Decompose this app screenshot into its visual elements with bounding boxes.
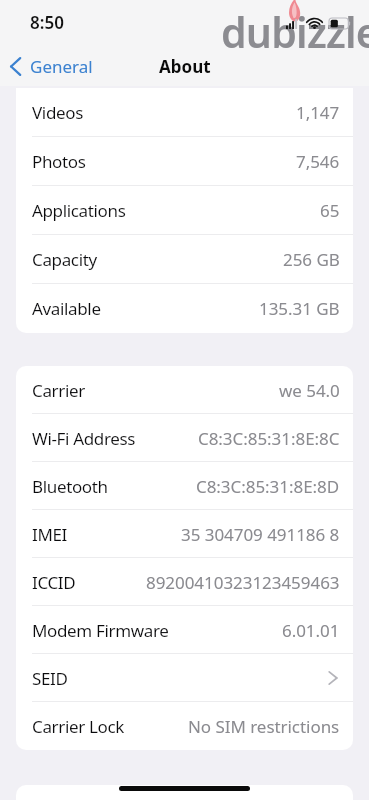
button[interactable]: Bluetooth [16,462,353,510]
staticText: 6.01.01 [282,619,340,642]
button[interactable]: Back [9,55,93,78]
button[interactable]: Photos [16,137,353,186]
button[interactable]: Carrier [16,366,353,414]
staticText: 135.31 GB [259,297,340,320]
button[interactable]: Capacity [16,235,353,284]
staticText: Applications [32,199,126,222]
staticText: 1,147 [296,101,340,124]
button[interactable]: IMEI [16,510,353,558]
staticText: Modem Firmware [32,619,169,642]
staticText: SEID [32,667,68,690]
staticText: 256 GB [283,248,340,271]
staticText: 35 304709 491186 8 [181,523,340,546]
button[interactable]: Carrier Lock [16,702,353,750]
button[interactable]: ICCID [16,558,353,606]
staticText: Videos [32,101,83,124]
button[interactable]: SEID [16,654,353,702]
staticText: C8:3C:85:31:8E:8D [196,475,340,498]
other: Back [9,56,22,77]
staticText: Wi-Fi Address [32,427,136,450]
staticText: 8:50 [30,11,64,34]
staticText: C8:3C:85:31:8E:8C [198,427,340,450]
staticText: IMEI [32,523,67,546]
staticText: No SIM restrictions [188,715,340,738]
staticText: Capacity [32,248,97,271]
staticText: Bluetooth [32,475,108,498]
button[interactable]: Videos [16,88,353,137]
button[interactable]: Available [16,284,353,333]
staticText: Available [32,297,101,320]
staticText: 89200410323123459463 [146,571,340,594]
button[interactable]: Applications [16,186,353,235]
staticText: 7,546 [296,150,340,173]
staticText: we 54.0 [279,379,340,402]
staticText: Carrier [32,379,85,402]
button[interactable]: Wi-Fi Address [16,414,353,462]
staticText: ICCID [32,571,76,594]
button[interactable]: Modem Firmware [16,606,353,654]
staticText: dubizzle [221,4,369,60]
staticText: 65 [320,199,340,222]
staticText: Carrier Lock [32,715,124,738]
staticText: Photos [32,150,86,173]
staticText: General [30,55,93,78]
staticText: About [159,55,211,78]
